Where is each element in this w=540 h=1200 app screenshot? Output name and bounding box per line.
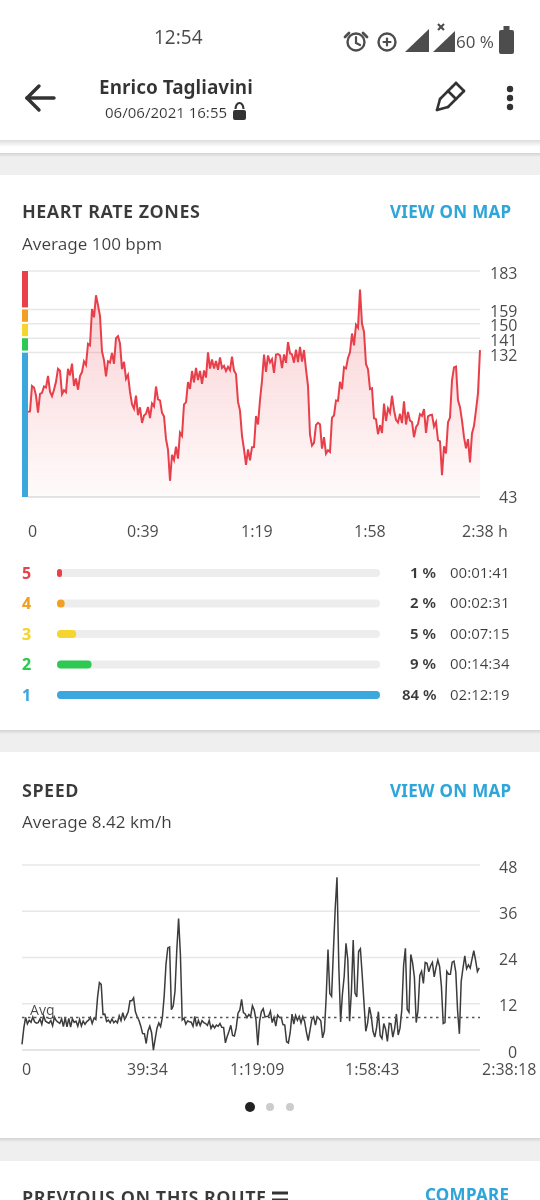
staticText: 2:38:18 — [482, 1058, 537, 1080]
staticText: 36 — [499, 902, 518, 924]
staticText: Enrico Tagliavini — [99, 74, 253, 100]
staticText: Avg — [30, 1000, 55, 1019]
staticText: 4 — [22, 592, 32, 614]
staticText: 06/06/2021 16:55 — [105, 102, 228, 122]
staticText: COMPARE — [425, 1183, 510, 1200]
staticText: 1:19:09 — [230, 1058, 285, 1080]
staticText: HEART RATE ZONES — [22, 199, 201, 224]
staticText: PREVIOUS ON THIS ROUTE — [22, 1185, 267, 1200]
staticText: 2 — [22, 653, 32, 675]
staticText: 00:01:41 — [450, 562, 510, 582]
staticText: 1:58 — [354, 520, 386, 542]
staticText: 0 — [22, 1058, 32, 1080]
staticText: VIEW ON MAP — [390, 200, 512, 223]
button[interactable] — [16, 74, 64, 122]
staticText: 2 % — [410, 592, 437, 612]
staticText: 9 % — [410, 653, 437, 673]
staticText: 02:12:19 — [450, 684, 510, 704]
staticText: 00:02:31 — [450, 592, 510, 612]
staticText: 84 % — [402, 684, 437, 704]
staticText: 0 — [28, 520, 38, 542]
staticText: 183 — [490, 262, 518, 284]
staticText: 1 % — [410, 562, 437, 582]
staticText: 43 — [499, 486, 518, 508]
staticText: Average 100 bpm — [22, 232, 163, 255]
staticText: 60 % — [456, 30, 494, 53]
staticText: SPEED — [22, 778, 79, 803]
staticText: 12:54 — [154, 24, 203, 50]
staticText: VIEW ON MAP — [390, 779, 512, 802]
staticText: 3 — [22, 623, 32, 645]
staticText: 39:34 — [127, 1058, 168, 1080]
staticText: 24 — [499, 948, 518, 970]
staticText: 00:07:15 — [450, 623, 510, 643]
staticText: Average 8.42 km/h — [22, 810, 172, 833]
staticText: 5 — [22, 562, 32, 584]
staticText: 5 % — [410, 623, 437, 643]
staticText: 1:58:43 — [345, 1058, 400, 1080]
staticText: 1 — [22, 684, 32, 706]
staticText: 141 — [490, 329, 518, 351]
staticText: 150 — [490, 314, 518, 336]
staticText: 48 — [499, 856, 518, 878]
staticText: 1:19 — [241, 520, 273, 542]
staticText: 00:14:34 — [450, 653, 510, 673]
staticText: 2:38 h — [462, 520, 508, 542]
staticText: 12 — [499, 994, 518, 1016]
staticText: 159 — [490, 300, 518, 322]
staticText: 132 — [490, 344, 518, 366]
staticText: 0 — [508, 1041, 518, 1063]
button[interactable] — [486, 74, 534, 122]
staticText: 0:39 — [127, 520, 159, 542]
button[interactable] — [424, 74, 472, 122]
